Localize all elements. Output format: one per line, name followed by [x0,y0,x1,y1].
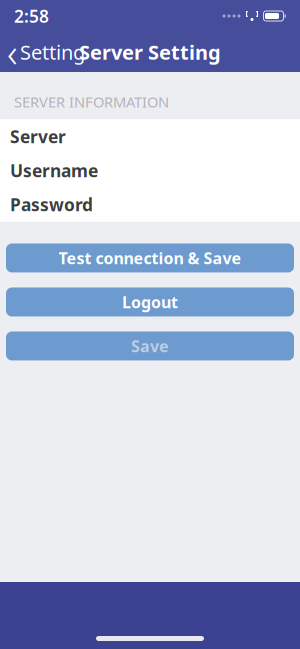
button[interactable]: Logout [6,287,294,316]
button[interactable]: Password [0,187,300,221]
button[interactable]: ‹ [0,32,95,72]
button[interactable]: Server [0,119,300,153]
staticText: Logout [122,291,178,313]
button[interactable]: Save [6,331,294,360]
button[interactable]: Test connection & Save [6,243,294,272]
staticText: 2:58 [14,4,49,27]
staticText: SERVER INFORMATION [14,92,169,111]
staticText: Test connection & Save [58,247,241,269]
staticText: Server [10,125,66,148]
staticText: Save [131,335,169,357]
staticText: Password [10,193,93,216]
staticText: Setting [20,39,85,65]
staticText: Username [10,159,98,182]
staticText: Server Setting [79,39,221,65]
button[interactable]: Username [0,153,300,187]
staticText: ‹ [7,25,18,78]
